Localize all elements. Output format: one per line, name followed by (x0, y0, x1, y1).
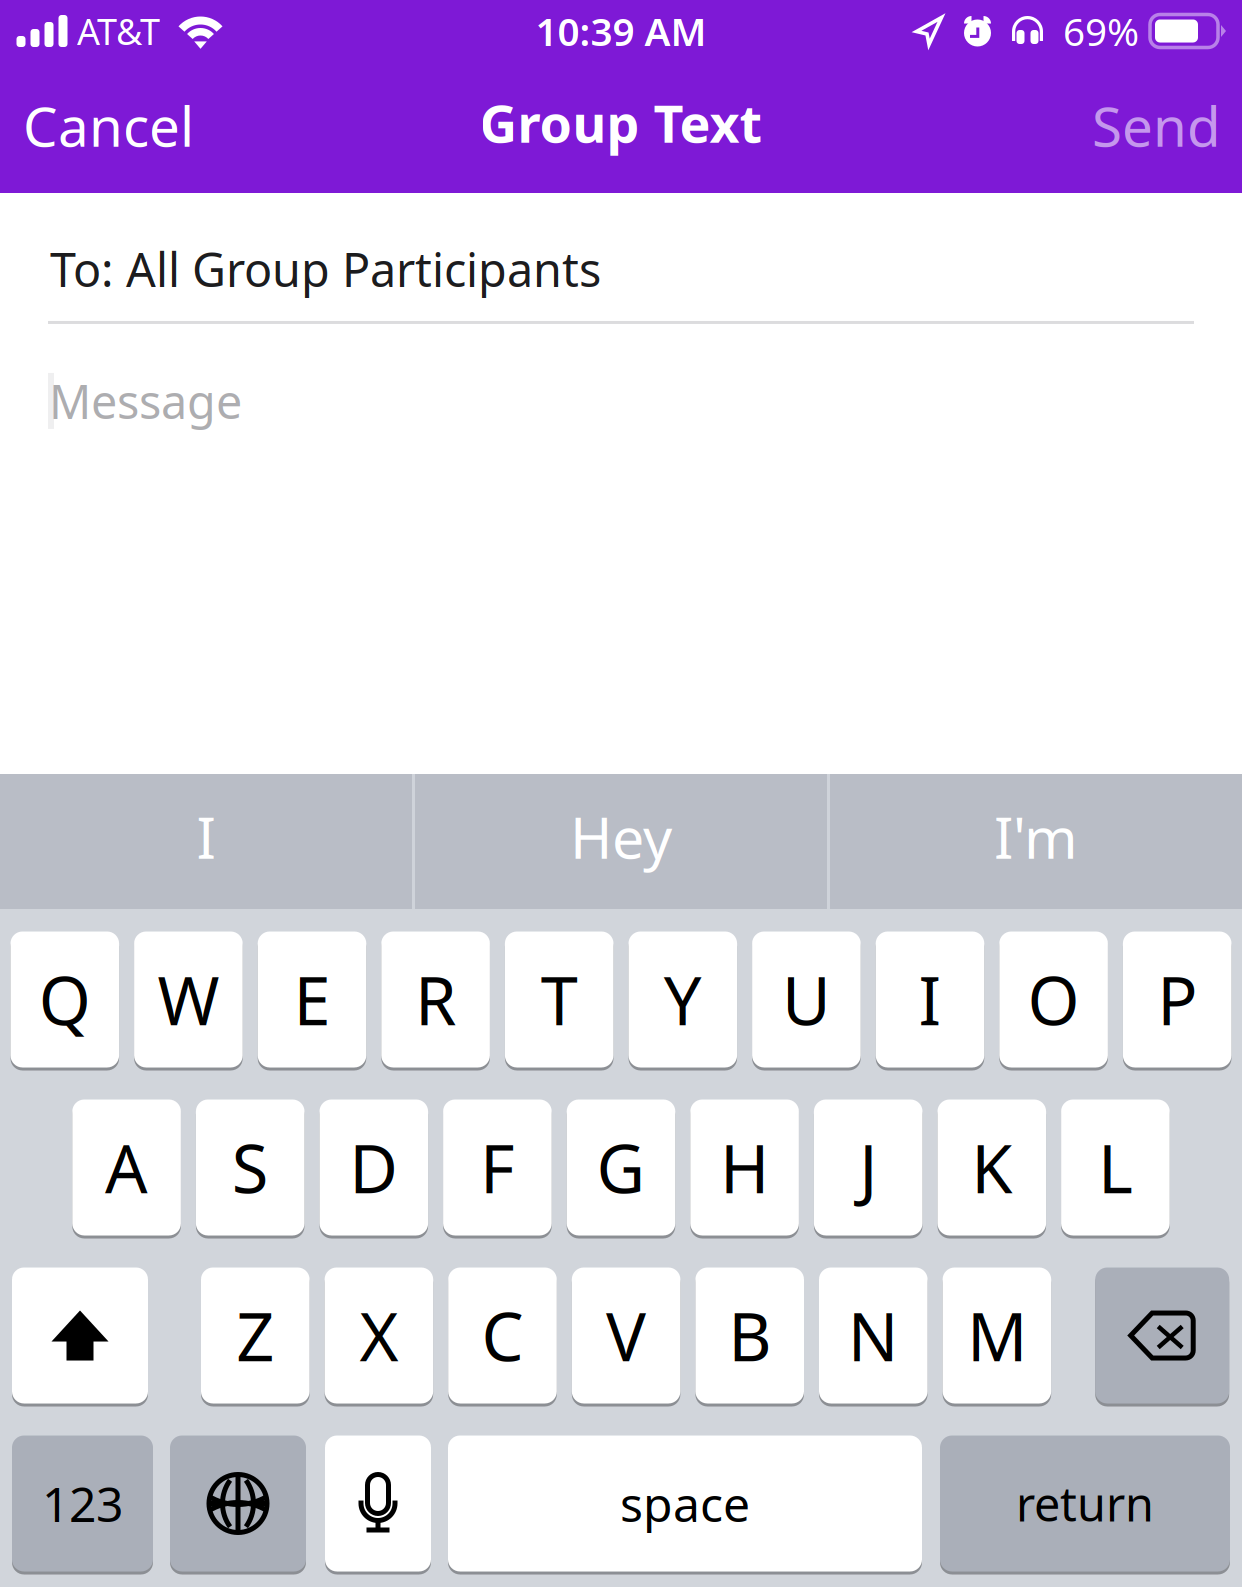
button[interactable]: Send (1064, 69, 1242, 186)
staticText: To: All Group Participants (50, 238, 601, 300)
staticText: G (596, 1123, 645, 1212)
staticText: R (415, 955, 456, 1044)
staticText: I (918, 955, 941, 1044)
button[interactable]: Message (0, 324, 1242, 472)
staticText: Message (49, 370, 242, 432)
staticText: Z (236, 1291, 274, 1380)
staticText: U (782, 955, 831, 1044)
staticText: 69% (1063, 5, 1139, 57)
button[interactable]: B (695, 1266, 804, 1405)
button[interactable]: T (505, 930, 613, 1069)
button[interactable]: K (937, 1098, 1046, 1237)
button[interactable]: N (819, 1266, 928, 1405)
staticText: D (349, 1123, 398, 1212)
button[interactable]: I'm (830, 774, 1242, 909)
button[interactable]: S (196, 1098, 304, 1237)
staticText: 10:39 AM (535, 5, 706, 57)
button[interactable]: I (0, 774, 412, 909)
staticText: Group Text (479, 88, 762, 157)
staticText: space (620, 1472, 750, 1535)
staticText: O (1028, 955, 1080, 1044)
button[interactable]: Dictate (325, 1434, 431, 1573)
staticText: Y (664, 955, 702, 1044)
staticText: L (1098, 1123, 1133, 1212)
button[interactable]: return (940, 1434, 1230, 1573)
button[interactable]: W (134, 930, 243, 1069)
staticText: A (105, 1123, 148, 1212)
button[interactable]: Numbers (12, 1434, 153, 1573)
staticText: F (480, 1123, 515, 1212)
button[interactable]: O (999, 930, 1108, 1069)
staticText: M (967, 1291, 1027, 1380)
staticText: T (541, 955, 578, 1044)
staticText: J (859, 1123, 877, 1212)
staticText: 123 (42, 1472, 123, 1535)
button[interactable]: Y (628, 930, 737, 1069)
button[interactable]: L (1061, 1098, 1170, 1237)
button[interactable]: Next keyboard (170, 1434, 306, 1573)
staticText: E (293, 955, 330, 1044)
button[interactable]: I (876, 930, 984, 1069)
button[interactable]: J (814, 1098, 922, 1237)
button[interactable]: P (1123, 930, 1231, 1069)
staticText: B (728, 1291, 771, 1380)
button[interactable]: Hey (415, 774, 827, 909)
staticText: I (196, 798, 215, 874)
staticText: C (481, 1291, 523, 1380)
button[interactable]: Z (201, 1266, 310, 1405)
button[interactable]: Cancel (0, 69, 221, 186)
button[interactable]: Q (10, 930, 119, 1069)
button[interactable]: H (690, 1098, 799, 1237)
button[interactable]: A (72, 1098, 181, 1237)
button[interactable]: G (567, 1098, 675, 1237)
button[interactable]: Delete (1095, 1266, 1229, 1405)
button[interactable]: E (258, 930, 366, 1069)
button[interactable]: M (943, 1266, 1051, 1405)
staticText: Send (1092, 89, 1221, 162)
staticText: I'm (994, 798, 1078, 874)
staticText: return (1016, 1472, 1154, 1534)
button[interactable]: D (319, 1098, 428, 1237)
staticText: K (971, 1123, 1012, 1212)
staticText: H (720, 1123, 769, 1212)
button[interactable]: To: All Group Participants (0, 193, 1242, 321)
staticText: N (848, 1291, 899, 1380)
button[interactable]: F (443, 1098, 552, 1237)
staticText: P (1157, 955, 1197, 1044)
button[interactable]: X (325, 1266, 433, 1405)
button[interactable]: V (572, 1266, 680, 1405)
staticText: S (232, 1123, 269, 1212)
button[interactable]: Shift (12, 1266, 148, 1405)
staticText: X (359, 1291, 398, 1380)
button[interactable]: U (752, 930, 861, 1069)
staticText: Q (39, 955, 91, 1044)
button[interactable]: C (448, 1266, 557, 1405)
staticText: W (157, 955, 219, 1044)
button[interactable]: R (381, 930, 490, 1069)
button[interactable]: space (448, 1434, 922, 1573)
staticText: V (606, 1291, 646, 1380)
staticText: Hey (570, 798, 672, 874)
staticText: AT&T (77, 7, 160, 55)
staticText: Cancel (23, 89, 194, 162)
